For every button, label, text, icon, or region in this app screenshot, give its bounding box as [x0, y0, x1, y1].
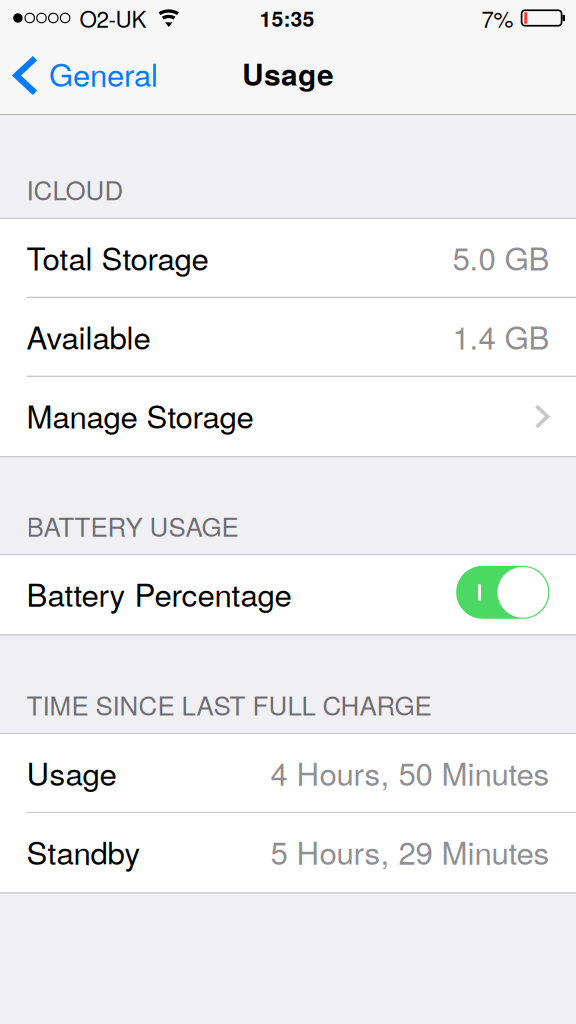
staticText: Manage Storage — [26, 393, 253, 437]
staticText: Usage — [26, 750, 116, 795]
staticText: 15:35 — [259, 3, 314, 33]
button[interactable]: Battery Percentage, on — [456, 568, 549, 621]
staticText: O2-UK — [79, 2, 146, 34]
staticText: 4 Hours, 50 Minutes — [270, 750, 549, 795]
staticText: Standby — [26, 829, 140, 874]
button[interactable]: Manage Storage — [0, 377, 576, 456]
staticText: BATTERY USAGE — [26, 507, 238, 544]
staticText: Battery Percentage — [26, 571, 291, 616]
staticText: Usage — [242, 52, 334, 95]
staticText: 7% — [482, 2, 514, 34]
staticText: 5 Hours, 29 Minutes — [270, 829, 549, 874]
staticText: 1.4 GB — [452, 314, 549, 358]
staticText: Total Storage — [26, 235, 208, 279]
staticText: TIME SINCE LAST FULL CHARGE — [26, 686, 431, 723]
button[interactable]: General — [0, 36, 170, 115]
staticText: General — [49, 51, 158, 96]
staticText: Available — [26, 314, 150, 358]
staticText: 5.0 GB — [452, 235, 549, 279]
staticText: ICLOUD — [26, 171, 123, 208]
